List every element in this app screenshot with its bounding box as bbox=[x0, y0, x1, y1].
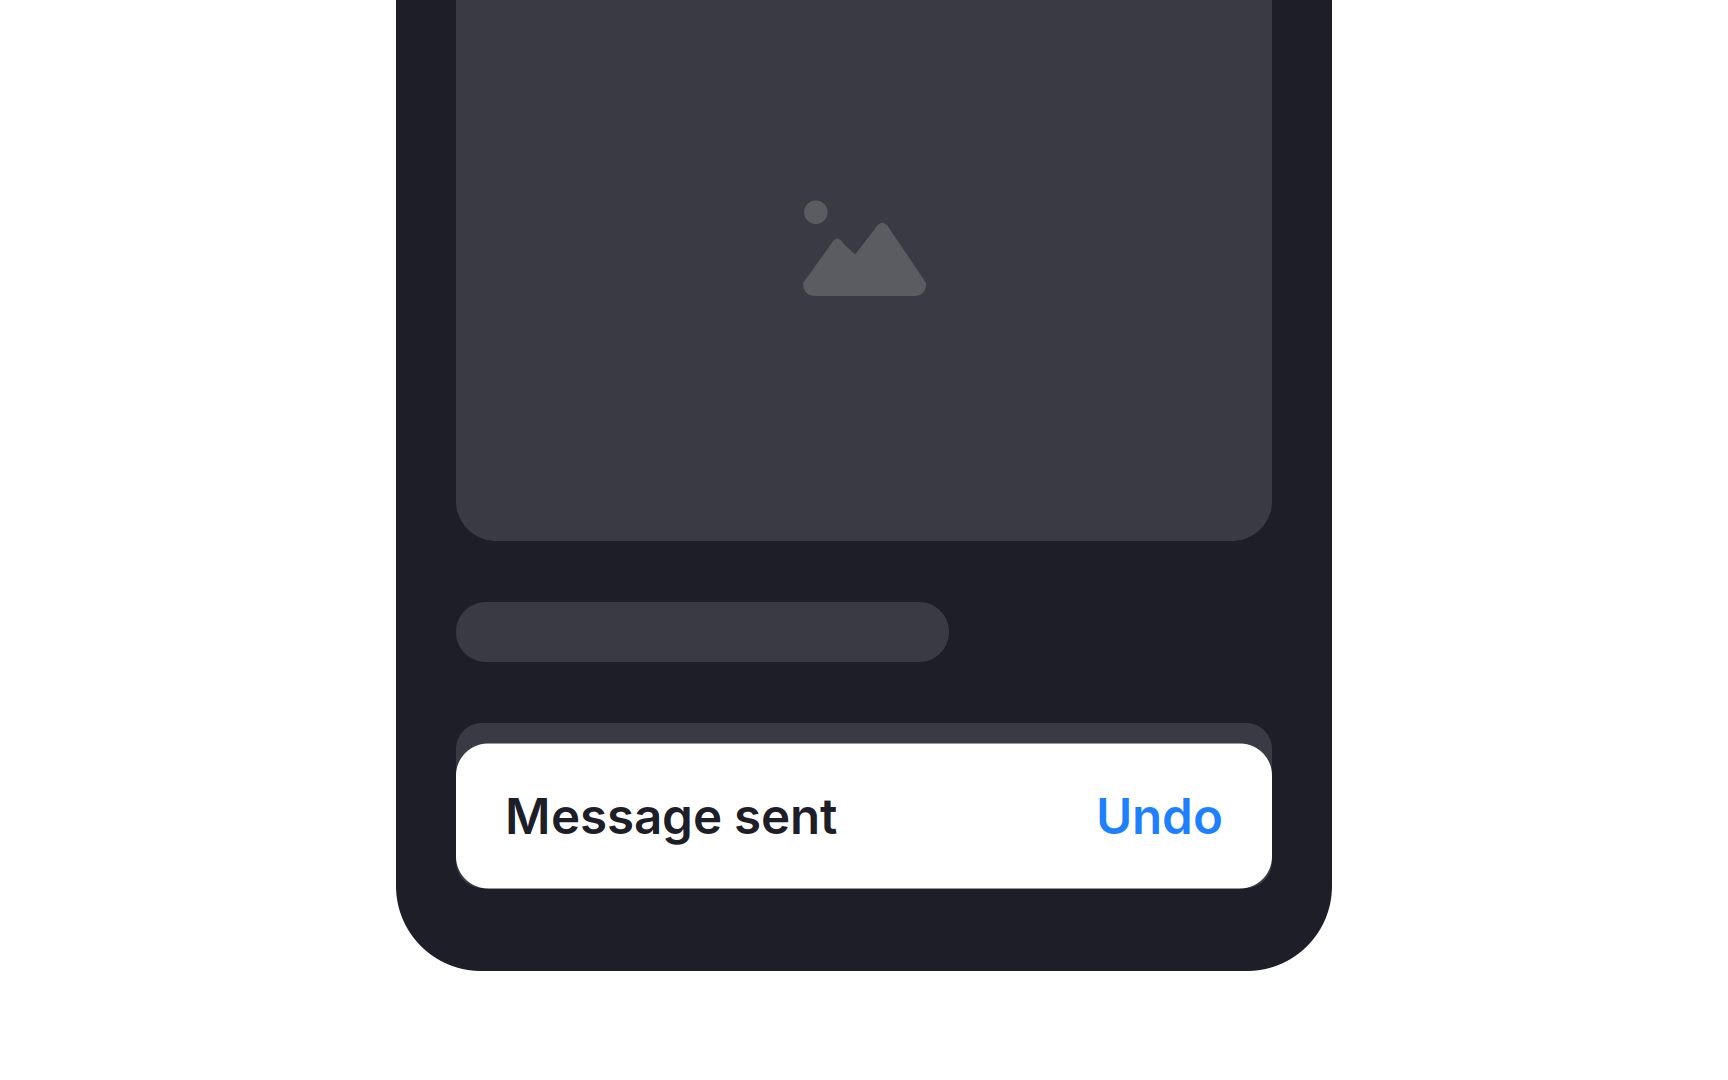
button[interactable]: Undo bbox=[1096, 743, 1223, 888]
button[interactable]: Photo attachment bbox=[456, 0, 1272, 541]
staticText: Undo bbox=[1096, 786, 1223, 846]
staticText: Message sent bbox=[505, 786, 837, 846]
